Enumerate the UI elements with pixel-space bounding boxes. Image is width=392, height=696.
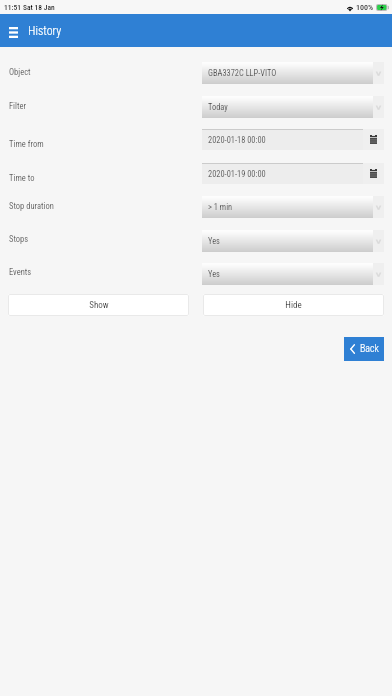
button[interactable]: Hide	[203, 294, 384, 316]
button[interactable]: Filter	[0, 98, 195, 114]
staticText: Stops	[9, 234, 29, 244]
staticText: Yes	[208, 236, 220, 246]
button[interactable]: 2020-01-19 00:00	[202, 163, 384, 184]
button[interactable]: Time from	[0, 136, 195, 152]
staticText: Back	[360, 343, 379, 355]
button[interactable]: Object	[0, 64, 195, 80]
button[interactable]: Menu	[2, 21, 24, 43]
staticText: Time from	[9, 139, 44, 149]
button[interactable]: > 1 min	[202, 196, 384, 218]
staticText: 11:51	[4, 3, 21, 12]
staticText: Sat 18 Jan	[23, 3, 55, 12]
staticText: Filter	[9, 101, 27, 111]
staticText: Show	[89, 300, 109, 311]
button[interactable]: 2020-01-18 00:00	[202, 129, 384, 150]
staticText: Stop duration	[9, 201, 54, 211]
staticText: History	[28, 24, 62, 38]
button[interactable]: Today	[202, 96, 384, 118]
staticText: Hide	[285, 300, 302, 311]
other: Pick date	[363, 129, 384, 150]
button[interactable]: Events	[0, 264, 195, 280]
staticText: Today	[208, 102, 228, 112]
staticText: Events	[9, 267, 32, 277]
button[interactable]: Yes	[202, 230, 384, 252]
button[interactable]: Back	[344, 337, 384, 361]
staticText: 100%	[356, 3, 374, 12]
button[interactable]: Time to	[0, 170, 195, 186]
button[interactable]: Show	[8, 294, 189, 316]
staticText: Time to	[9, 173, 35, 183]
staticText: Yes	[208, 269, 220, 279]
other: Pick date	[363, 163, 384, 184]
button[interactable]: Yes	[202, 263, 384, 285]
staticText: > 1 min	[208, 202, 233, 212]
staticText: Object	[9, 67, 31, 77]
staticText: GBA3372C LLP-VITO	[208, 68, 277, 78]
button[interactable]: Stops	[0, 231, 195, 247]
button[interactable]: GBA3372C LLP-VITO	[202, 62, 384, 84]
staticText: 2020-01-19 00:00	[208, 169, 266, 179]
staticText: 2020-01-18 00:00	[208, 135, 266, 145]
button[interactable]: Stop duration	[0, 198, 195, 214]
